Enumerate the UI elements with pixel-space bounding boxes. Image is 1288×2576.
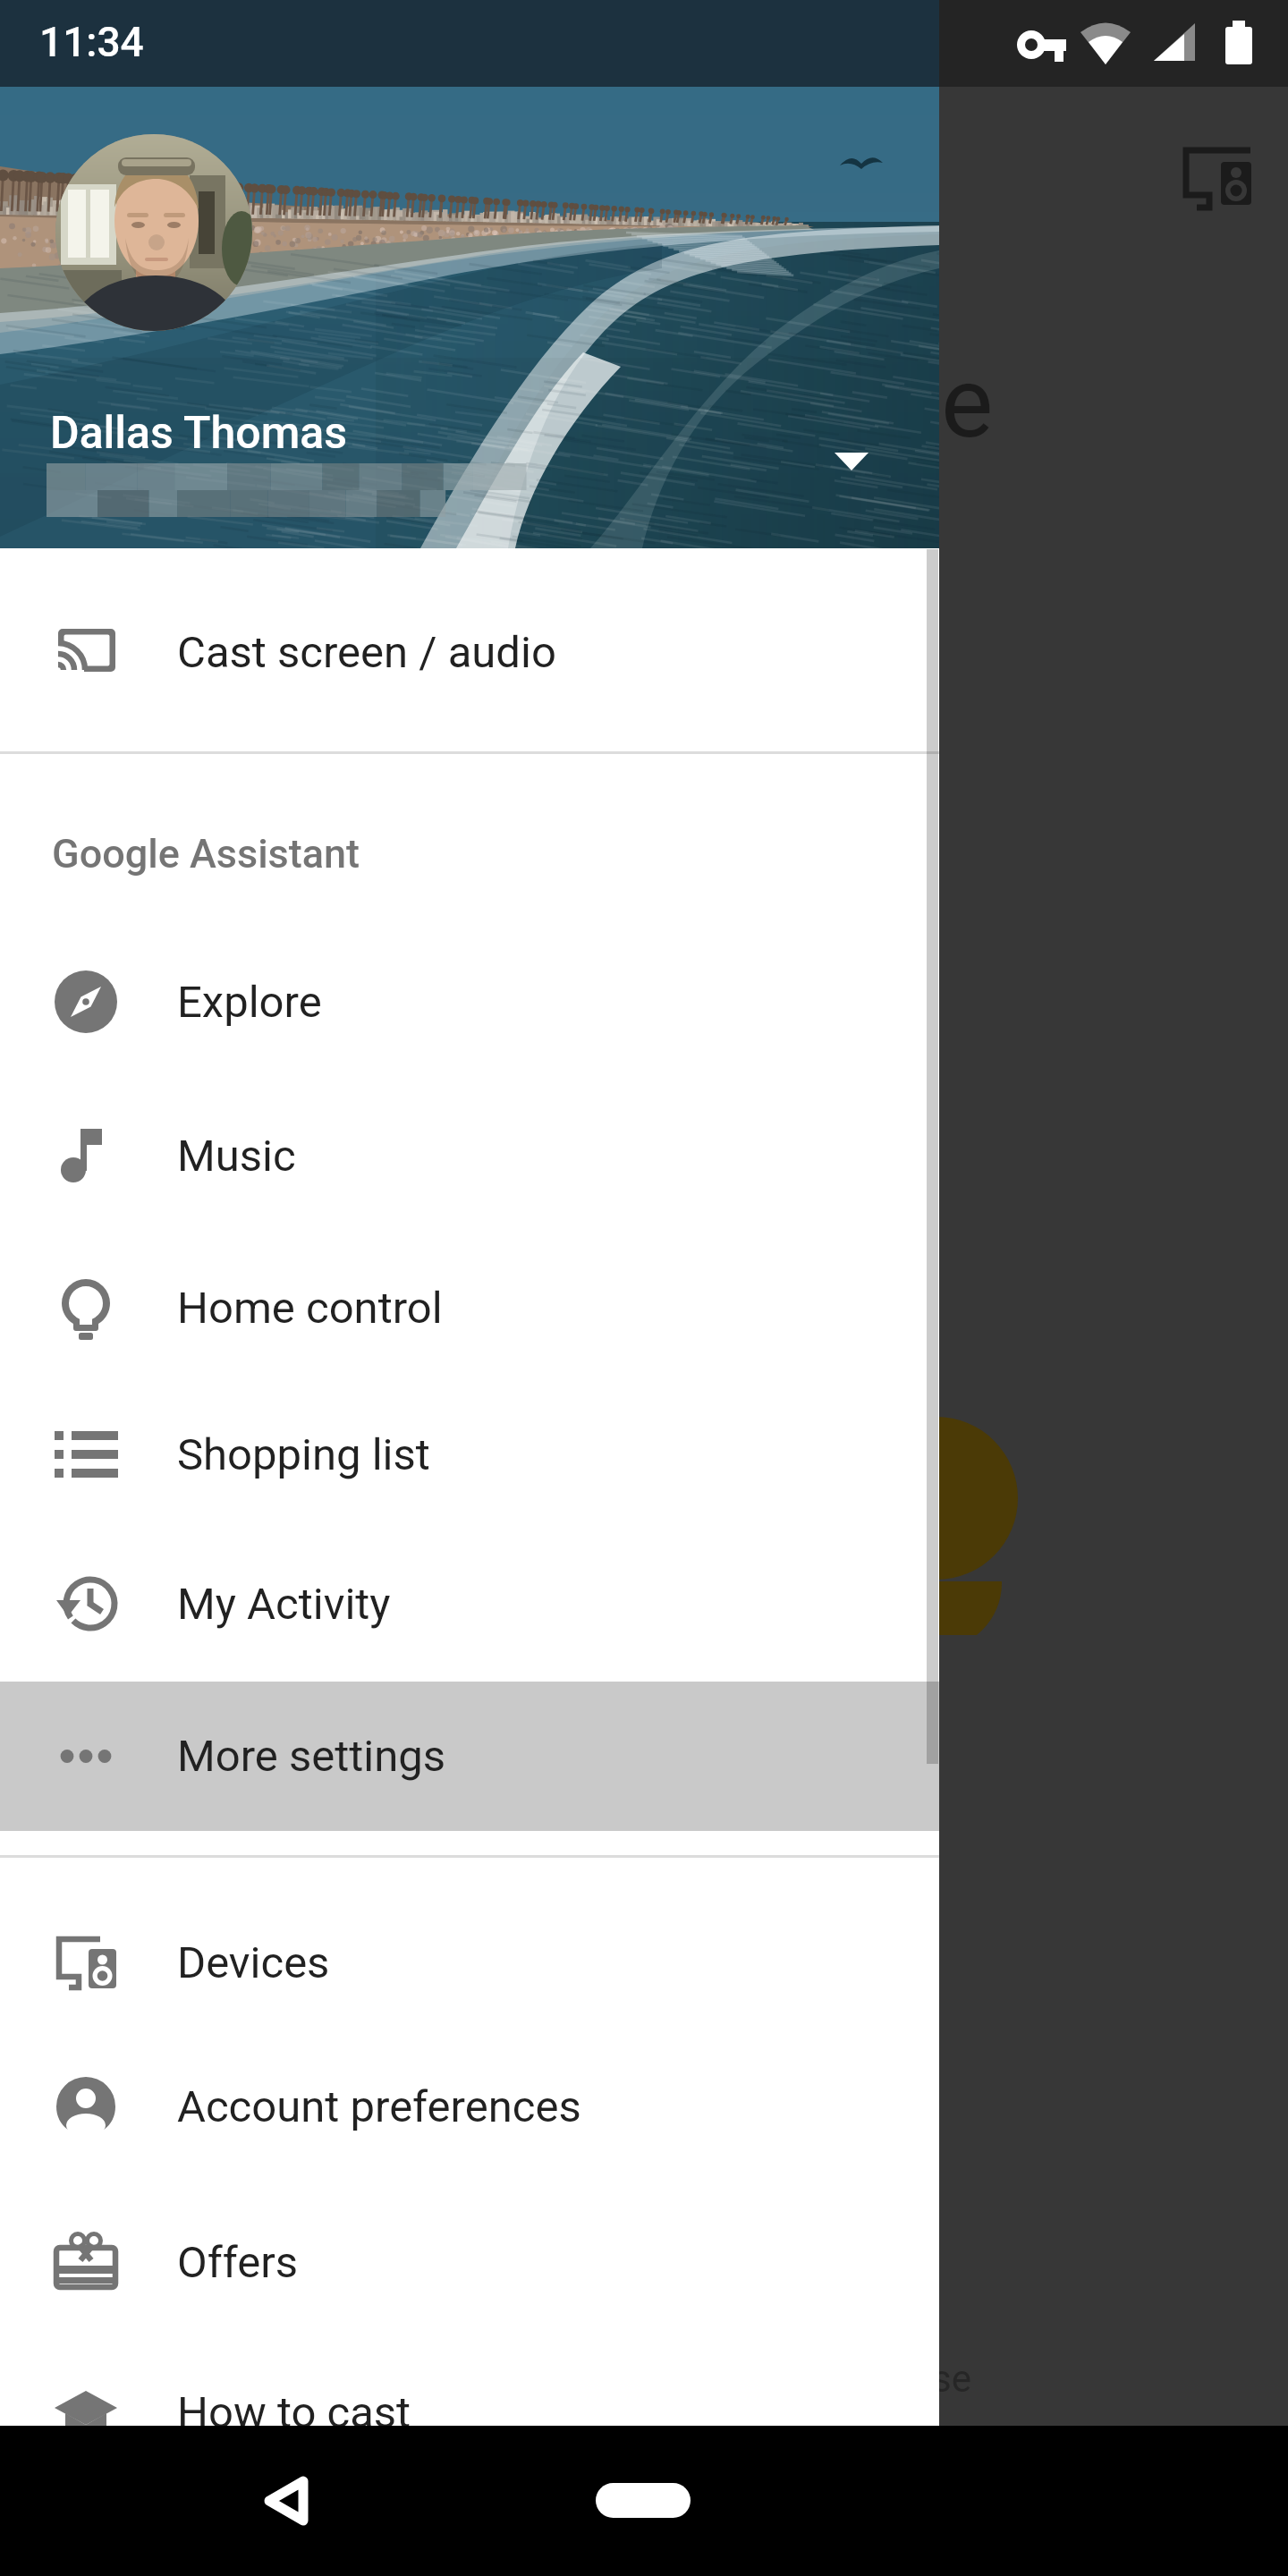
button[interactable]: Cast screen / audio (0, 577, 939, 727)
button[interactable]: Back (225, 2440, 347, 2562)
button[interactable]: My Activity (0, 1529, 939, 1679)
button[interactable]: Account preferences (0, 2031, 939, 2182)
staticText: Home control (177, 1283, 443, 1334)
staticText: Google Assistant (52, 830, 360, 877)
button[interactable]: Home control (0, 1233, 939, 1383)
button[interactable]: How to cast (0, 2337, 939, 2487)
staticText: Account preferences (177, 2081, 581, 2132)
staticText: My Activity (177, 1579, 391, 1630)
button[interactable]: More settings (0, 1682, 939, 1831)
button[interactable]: Devices (0, 1887, 939, 2038)
staticText: Explore (177, 977, 322, 1028)
staticText: 11:34 (39, 18, 144, 66)
button[interactable]: Profile photo (55, 134, 252, 331)
button[interactable]: Shopping list (0, 1379, 939, 1529)
staticText: Music (177, 1131, 296, 1182)
staticText: Offers (177, 2237, 299, 2288)
staticText: Shopping list (177, 1429, 430, 1480)
staticText: Cast screen / audio (177, 627, 556, 678)
staticText: e (941, 345, 994, 461)
button[interactable]: Music (0, 1080, 939, 1231)
button[interactable]: Offers (0, 2187, 939, 2337)
staticText: Devices (177, 1937, 330, 1988)
staticText: se (932, 2357, 971, 2401)
staticText: How to cast (177, 2387, 411, 2438)
button[interactable]: Home (582, 2440, 704, 2562)
button[interactable]: Explore (0, 927, 939, 1077)
staticText: More settings (177, 1731, 446, 1782)
staticText: Dallas Thomas (50, 407, 347, 460)
